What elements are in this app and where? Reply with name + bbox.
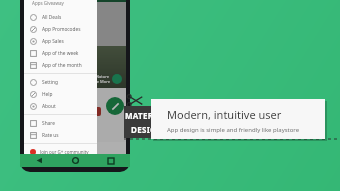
button[interactable]: Setting bbox=[24, 76, 97, 88]
staticText: Share bbox=[42, 120, 55, 127]
button[interactable]: App of the month bbox=[24, 59, 97, 71]
staticText: Rate us bbox=[42, 132, 59, 139]
button[interactable]: Modern, intuitive user interface bbox=[151, 99, 325, 139]
staticText: Setting bbox=[42, 79, 58, 86]
button[interactable]: About bbox=[24, 100, 97, 112]
staticText: DESIGN bbox=[131, 124, 163, 135]
staticText: App of the week bbox=[42, 50, 79, 57]
button[interactable]: App Promocodes bbox=[24, 23, 97, 35]
button[interactable]: Rate us bbox=[24, 129, 97, 141]
button[interactable]: Join our G+ community bbox=[24, 146, 97, 157]
other: Cut bbox=[127, 95, 145, 107]
button[interactable]: All Deals bbox=[24, 11, 97, 23]
button[interactable]: Alert bbox=[92, 107, 101, 116]
staticText: Modern, intuitive user interface bbox=[167, 107, 317, 122]
staticText: Apps Giveaway bbox=[32, 0, 64, 6]
staticText: All Deals bbox=[42, 14, 62, 21]
staticText: Help bbox=[42, 91, 53, 98]
staticText: Notifications bbox=[53, 151, 71, 155]
button[interactable]: MATERIAL bbox=[124, 106, 169, 138]
staticText: Explore More bbox=[85, 79, 110, 84]
staticText: Nature bbox=[96, 74, 110, 79]
other: Recents bbox=[108, 158, 114, 164]
button[interactable]: Help bbox=[24, 88, 97, 100]
staticText: MATERIAL bbox=[125, 110, 168, 121]
other: Home bbox=[72, 157, 79, 164]
button[interactable]: Profile bbox=[24, 142, 49, 157]
staticText: App design is simple and friendly like p… bbox=[167, 126, 300, 134]
button[interactable]: Notifications bbox=[49, 142, 74, 157]
staticText: Profile bbox=[32, 151, 42, 155]
staticText: App Sales bbox=[42, 38, 64, 45]
staticText: App Promocodes bbox=[42, 26, 81, 33]
other: Back bbox=[36, 157, 43, 164]
button[interactable]: Edit bbox=[106, 97, 124, 115]
staticText: About bbox=[42, 103, 56, 110]
staticText: App of the month bbox=[42, 62, 82, 69]
button[interactable]: Play bbox=[112, 74, 122, 84]
button[interactable]: Share bbox=[24, 117, 97, 129]
staticText: Apps on bbox=[50, 19, 77, 29]
button[interactable]: App Sales bbox=[24, 35, 97, 47]
staticText: Join our G+ community bbox=[40, 149, 89, 155]
button[interactable]: App of the week bbox=[24, 47, 97, 59]
